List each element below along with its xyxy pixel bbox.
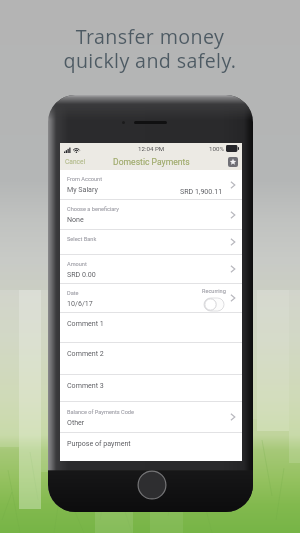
- button[interactable]: Amount: [60, 255, 242, 283]
- staticText: None: [67, 215, 84, 223]
- staticText: Comment 2: [67, 349, 104, 357]
- staticText: Domestic Payments: [113, 157, 190, 167]
- button[interactable]: Favourite: [228, 157, 238, 167]
- staticText: Purpose of payment: [67, 439, 131, 447]
- staticText: Comment 3: [67, 381, 104, 389]
- staticText: Choose a beneficiary: [67, 206, 119, 213]
- staticText: Cancel: [65, 158, 86, 166]
- staticText: Amount: [67, 261, 87, 268]
- staticText: 100%: [209, 145, 224, 152]
- staticText: Date: [67, 290, 79, 297]
- button[interactable]: Date: [60, 284, 242, 312]
- button[interactable]: Comment 3: [60, 375, 242, 401]
- staticText: SRD 1,900.11: [180, 187, 223, 195]
- staticText: From Account: [67, 176, 103, 183]
- button[interactable]: Select Bank: [60, 230, 242, 254]
- staticText: 12:04 PM: [138, 145, 165, 152]
- button[interactable]: Comment 2: [60, 343, 242, 374]
- staticText: SRD 0.00: [67, 270, 96, 278]
- staticText: Comment 1: [67, 319, 104, 327]
- staticText: 10/6/17: [67, 299, 93, 307]
- button[interactable]: Cancel: [60, 155, 91, 169]
- staticText: Other: [67, 418, 85, 426]
- button[interactable]: Comment 1: [60, 313, 242, 342]
- staticText: Select Bank: [67, 236, 97, 243]
- staticText: Transfer money quickly and safely.: [0, 23, 300, 74]
- staticText: Recurring: [202, 288, 226, 295]
- button[interactable]: Choose a beneficiary: [60, 200, 242, 229]
- button[interactable]: Purpose of payment: [60, 433, 242, 461]
- button[interactable]: Recurring toggle: [204, 298, 224, 311]
- button[interactable]: Balance of Payments Code: [60, 402, 242, 432]
- button[interactable]: From Account: [60, 170, 242, 199]
- staticText: Balance of Payments Code: [67, 409, 134, 416]
- staticText: My Salary: [67, 185, 98, 193]
